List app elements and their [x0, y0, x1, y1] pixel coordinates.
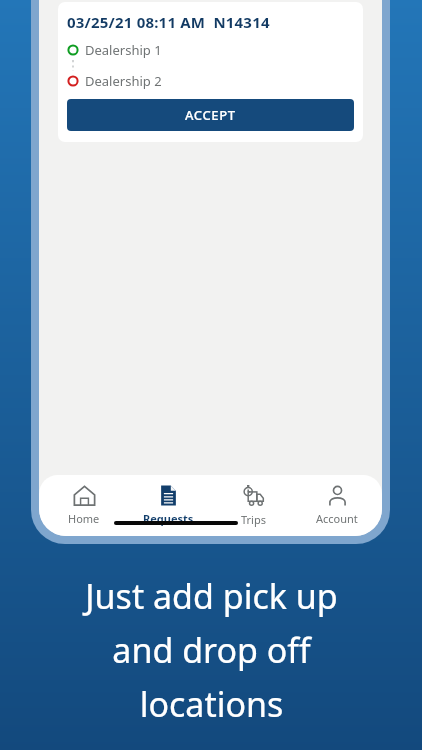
staticText: Dealership 2 — [85, 72, 162, 90]
staticText: Account — [316, 511, 358, 526]
button[interactable]: Account — [297, 480, 377, 530]
other: Home — [73, 484, 96, 507]
button[interactable]: ACCEPT — [67, 99, 354, 131]
staticText: 03/25/21 08:11 AM N14314 — [67, 12, 270, 32]
staticText: Just add pick up and drop off locations — [85, 573, 338, 727]
staticText: Trips — [241, 512, 266, 527]
staticText: Dealership 1 — [85, 41, 162, 59]
button[interactable]: Requests — [128, 480, 208, 530]
staticText: ACCEPT — [185, 106, 236, 124]
button[interactable]: Home — [44, 480, 124, 530]
other: Trips — [241, 484, 265, 508]
staticText: Requests — [143, 511, 194, 526]
staticText: Home — [68, 511, 100, 526]
other: Requests — [157, 484, 180, 507]
button[interactable]: Trips — [213, 480, 293, 531]
other: Account — [326, 484, 349, 507]
button[interactable]: 03/25/21 08:11 AM N14314 — [58, 2, 363, 142]
